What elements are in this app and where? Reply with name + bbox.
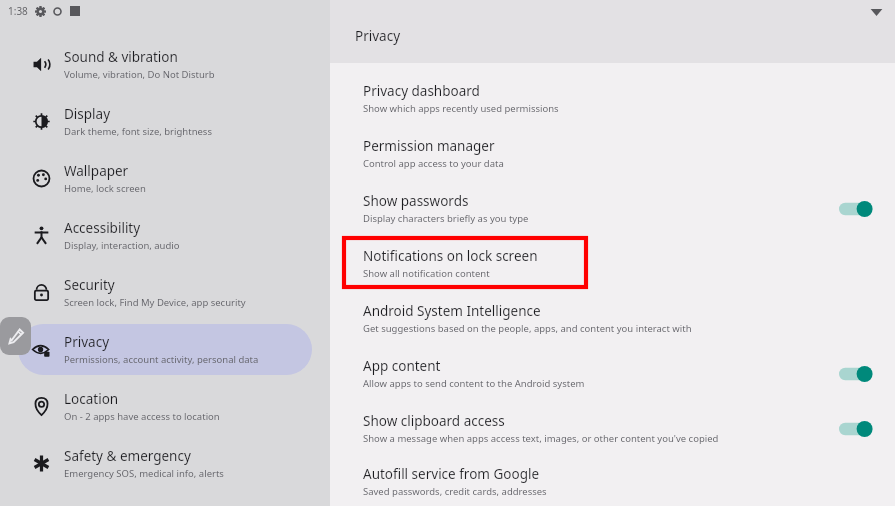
staticText: Privacy [355, 27, 401, 45]
button[interactable]: Display [18, 96, 312, 147]
staticText: Volume, vibration, Do Not Disturb [64, 68, 215, 81]
staticText: Get suggestions based on the people, app… [363, 322, 692, 335]
button[interactable]: Security [18, 267, 312, 318]
staticText: Safety & emergency [64, 447, 191, 465]
staticText: Privacy dashboard [363, 82, 480, 100]
staticText: Show which apps recently used permission… [363, 102, 559, 115]
staticText: Sound & vibration [64, 48, 178, 66]
button[interactable]: App content toggle [839, 364, 873, 384]
button[interactable]: Edit [0, 317, 31, 355]
button[interactable]: Accessibility [18, 210, 312, 261]
button[interactable]: Show passwords toggle [839, 199, 873, 219]
staticText: Home, lock screen [64, 182, 146, 195]
staticText: Show a message when apps access text, im… [363, 432, 719, 445]
staticText: Accessibility [64, 219, 141, 237]
button[interactable]: Permission manager [363, 126, 873, 181]
button[interactable]: Privacy [18, 324, 312, 375]
staticText: Privacy [64, 333, 110, 351]
staticText: Show clipboard access [363, 412, 505, 430]
staticText: Wallpaper [64, 162, 129, 180]
staticText: Location [64, 390, 119, 408]
button[interactable]: Notifications on lock screen [363, 236, 873, 291]
button[interactable]: Wallpaper [18, 153, 312, 204]
staticText: 1:38 [8, 4, 28, 18]
staticText: Display, interaction, audio [64, 239, 180, 252]
staticText: App content [363, 357, 441, 375]
staticText: Saved passwords, credit cards, addresses [363, 485, 547, 498]
button[interactable]: Location [18, 381, 312, 432]
staticText: Display characters briefly as you type [363, 212, 529, 225]
staticText: Control app access to your data [363, 157, 504, 170]
staticText: Screen lock, Find My Device, app securit… [64, 296, 246, 309]
button[interactable]: Show clipboard access [363, 401, 873, 456]
button[interactable]: Sound & vibration [18, 39, 312, 90]
staticText: Permissions, account activity, personal … [64, 353, 259, 366]
button[interactable]: Android System Intelligence [363, 291, 873, 346]
staticText: Display [64, 105, 111, 123]
staticText: Dark theme, font size, brightness [64, 125, 212, 138]
button[interactable]: App content [363, 346, 873, 401]
staticText: Allow apps to send content to the Androi… [363, 377, 585, 390]
staticText: Notifications on lock screen [363, 247, 538, 265]
staticText: Emergency SOS, medical info, alerts [64, 467, 224, 480]
button[interactable]: Safety & emergency [18, 438, 312, 489]
button[interactable]: Privacy dashboard [363, 71, 873, 126]
staticText: Show passwords [363, 192, 469, 210]
staticText: Show all notification content [363, 267, 490, 280]
button[interactable]: Show passwords [363, 181, 873, 236]
staticText: Permission manager [363, 137, 495, 155]
button[interactable]: Autofill service from Google [363, 456, 873, 506]
button[interactable]: Show clipboard access toggle [839, 419, 873, 439]
staticText: Autofill service from Google [363, 465, 540, 483]
staticText: Android System Intelligence [363, 302, 541, 320]
staticText: Security [64, 276, 115, 294]
staticText: On - 2 apps have access to location [64, 410, 220, 423]
